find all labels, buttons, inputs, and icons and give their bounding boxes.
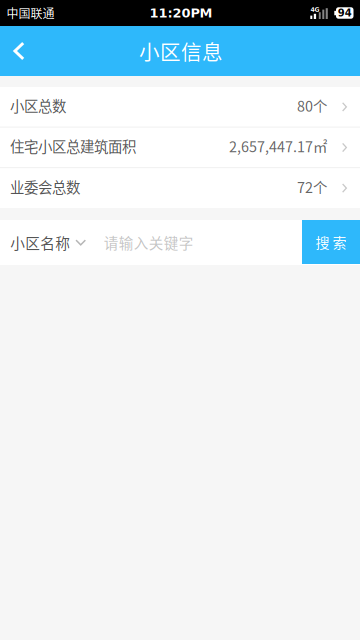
button[interactable]: 小区总数 xyxy=(0,87,360,127)
staticText: 80个 xyxy=(297,95,327,116)
staticText: 94 xyxy=(338,7,352,19)
staticText: 小区总数 xyxy=(10,95,66,116)
button[interactable]: 搜 索 xyxy=(302,220,360,264)
staticText: 4G xyxy=(311,6,320,13)
staticText: 请输入关键字 xyxy=(104,232,194,253)
button[interactable]: 住宅小区总建筑面积 xyxy=(0,128,360,167)
staticText: 2,657,447.17㎡ xyxy=(229,136,327,156)
button[interactable]: 小区名称 xyxy=(0,220,94,265)
staticText: 搜 索 xyxy=(315,232,346,252)
button[interactable]: 业委会总数 xyxy=(0,168,360,208)
staticText: 业委会总数 xyxy=(10,176,80,197)
button[interactable]: 请输入关键字 xyxy=(94,220,302,265)
staticText: 72个 xyxy=(297,176,327,197)
staticText: 住宅小区总建筑面积 xyxy=(10,136,136,156)
staticText: 中国联通 xyxy=(6,4,54,22)
staticText: 小区名称 xyxy=(10,232,70,253)
staticText: 11:20PM xyxy=(149,5,212,21)
staticText: 小区信息 xyxy=(139,36,223,66)
button[interactable]: Back xyxy=(0,26,45,76)
